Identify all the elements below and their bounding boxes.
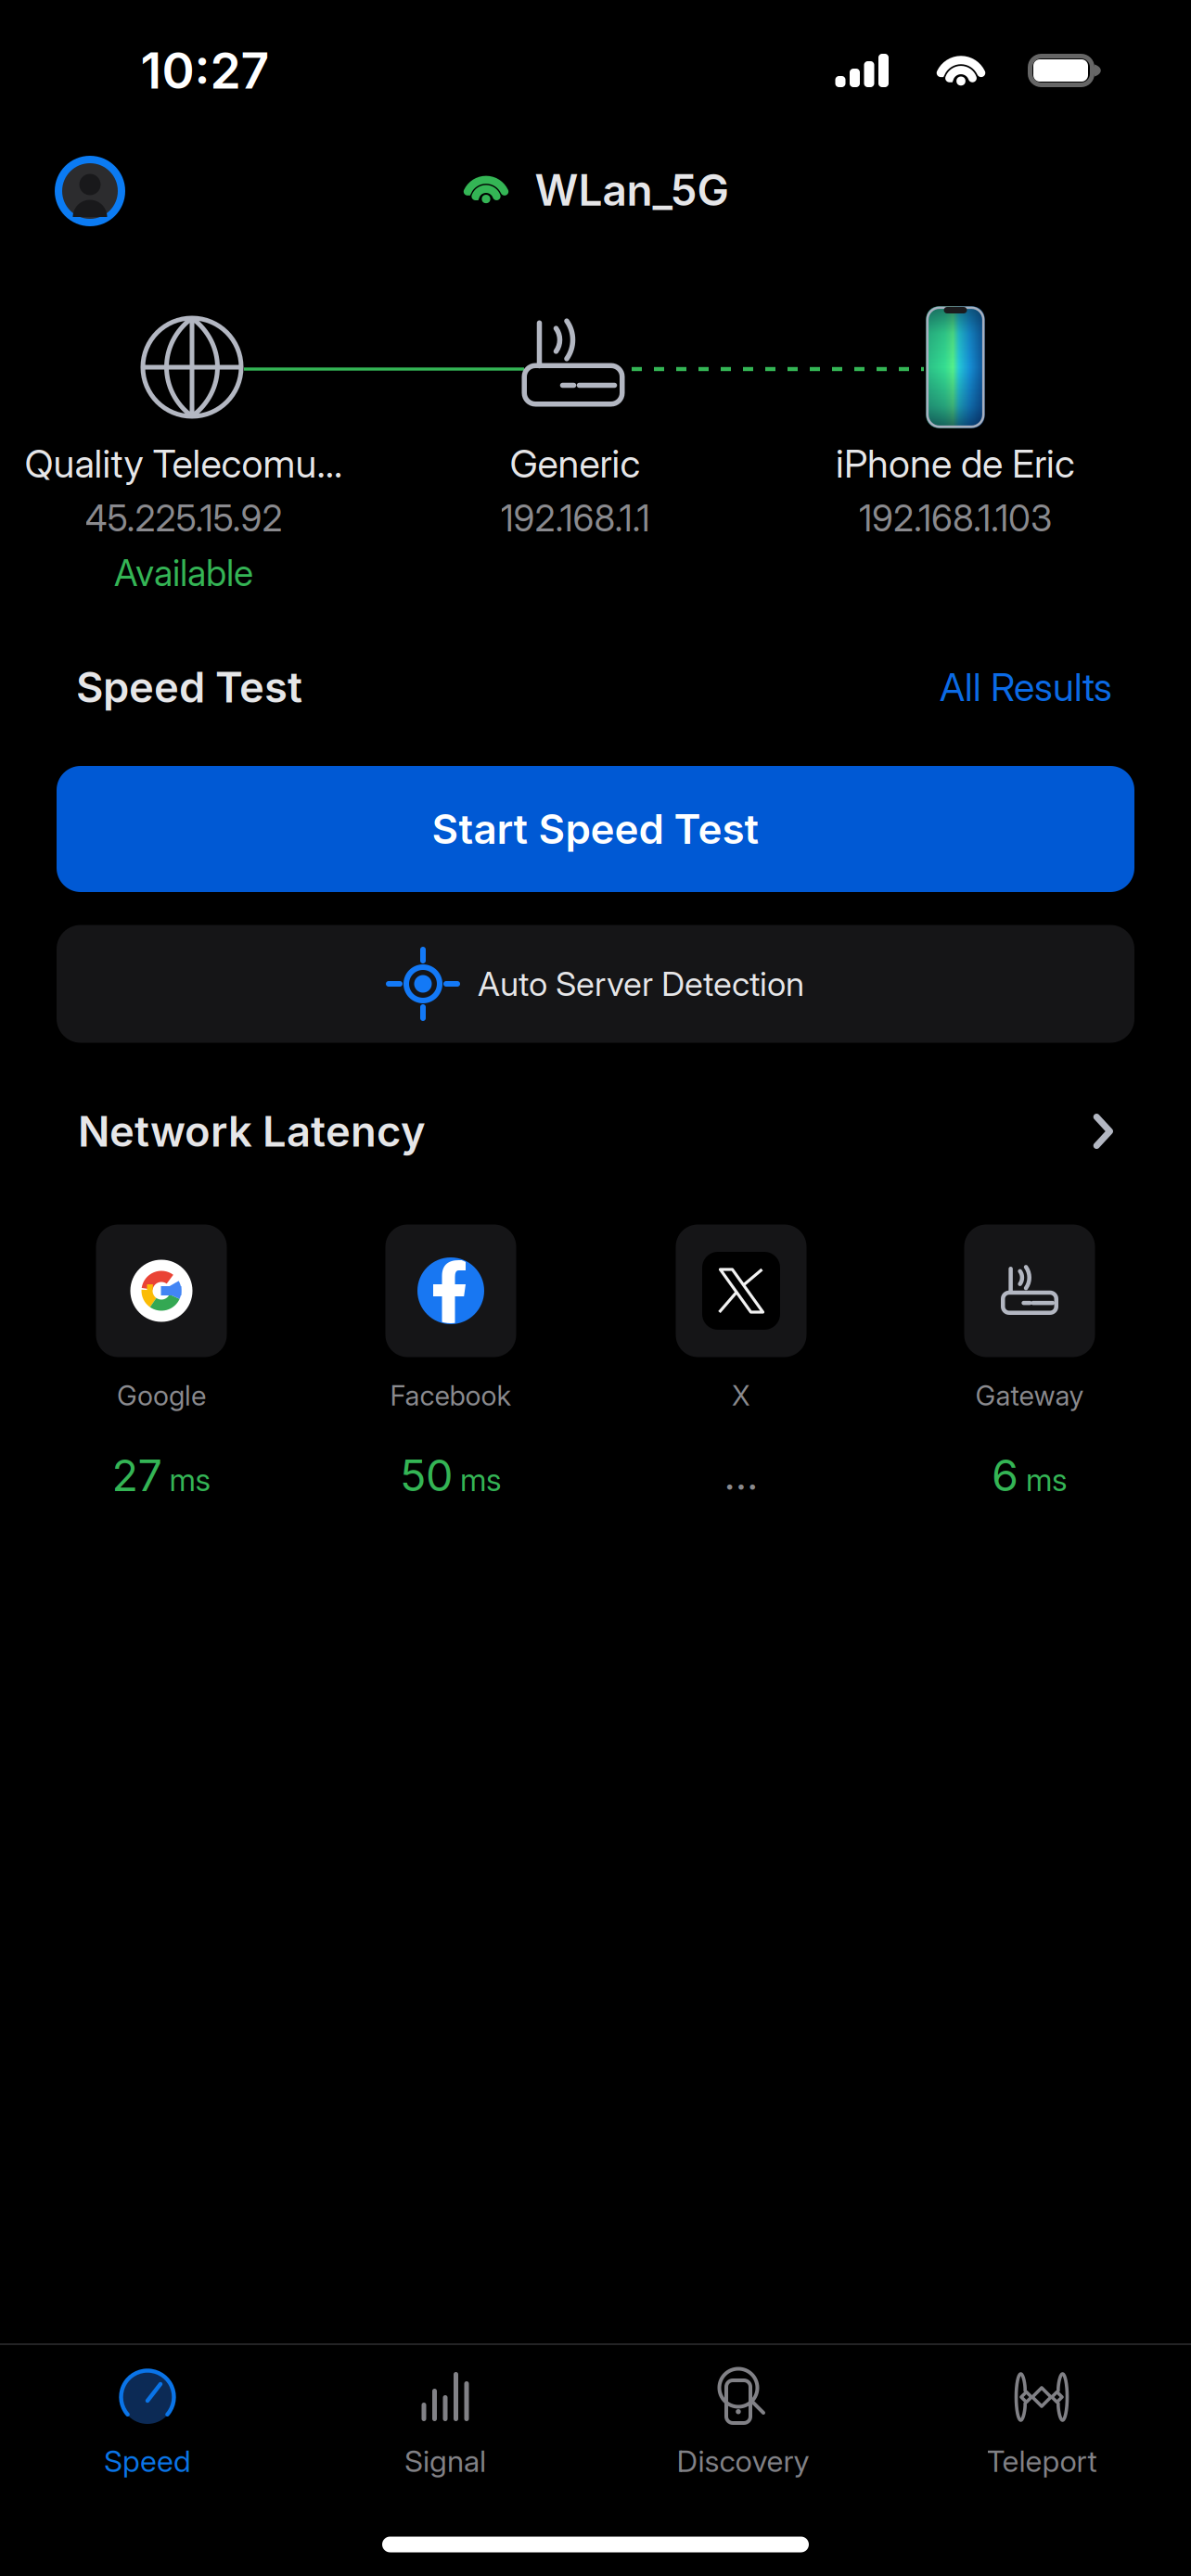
staticText: 10:27	[141, 41, 269, 100]
button[interactable]: Account	[55, 156, 125, 226]
staticText: 192.168.1.103	[859, 497, 1052, 540]
button[interactable]: X	[607, 1224, 876, 1502]
staticText: ms	[1026, 1461, 1068, 1498]
button[interactable]: All Results	[940, 655, 1112, 720]
staticText: ms	[460, 1461, 502, 1498]
button[interactable]: Gateway	[895, 1224, 1164, 1502]
staticText: 192.168.1.1	[500, 497, 650, 540]
staticText: Start Speed Test	[432, 804, 759, 854]
button[interactable]: Auto Server Detection	[57, 925, 1134, 1043]
staticText: Quality Telecomu…	[25, 440, 343, 487]
staticText: Google	[117, 1379, 206, 1412]
staticText: 50	[400, 1449, 453, 1502]
staticText: 6	[992, 1449, 1018, 1502]
button[interactable]: Speed	[8, 2346, 287, 2531]
staticText: Teleport	[986, 2443, 1097, 2479]
staticText: Facebook	[390, 1379, 512, 1412]
staticText: iPhone de Eric	[836, 440, 1075, 487]
staticText: Gateway	[975, 1379, 1084, 1412]
button[interactable]: Facebook	[316, 1224, 585, 1502]
staticText: Available	[114, 551, 253, 595]
staticText: Signal	[404, 2443, 486, 2479]
button[interactable]: Discovery	[604, 2346, 882, 2531]
button[interactable]: Teleport	[903, 2346, 1181, 2531]
staticText: X	[732, 1379, 750, 1412]
staticText: ms	[169, 1461, 211, 1498]
staticText: All Results	[940, 664, 1112, 710]
staticText: 27	[112, 1449, 162, 1502]
staticText: WLan_5G	[535, 164, 729, 216]
staticText: Speed Test	[76, 662, 302, 713]
button[interactable]: Start Speed Test	[57, 766, 1134, 892]
staticText: …	[724, 1451, 758, 1499]
button[interactable]: Network Latency	[78, 1097, 1113, 1166]
button[interactable]: Google	[27, 1224, 296, 1502]
button[interactable]: Signal	[306, 2346, 584, 2531]
staticText: Speed	[104, 2443, 191, 2479]
staticText: Discovery	[677, 2443, 809, 2479]
staticText: Network Latency	[78, 1106, 426, 1157]
staticText: Generic	[510, 440, 640, 487]
staticText: Auto Server Detection	[478, 964, 804, 1004]
staticText: 45.225.15.92	[85, 497, 282, 540]
